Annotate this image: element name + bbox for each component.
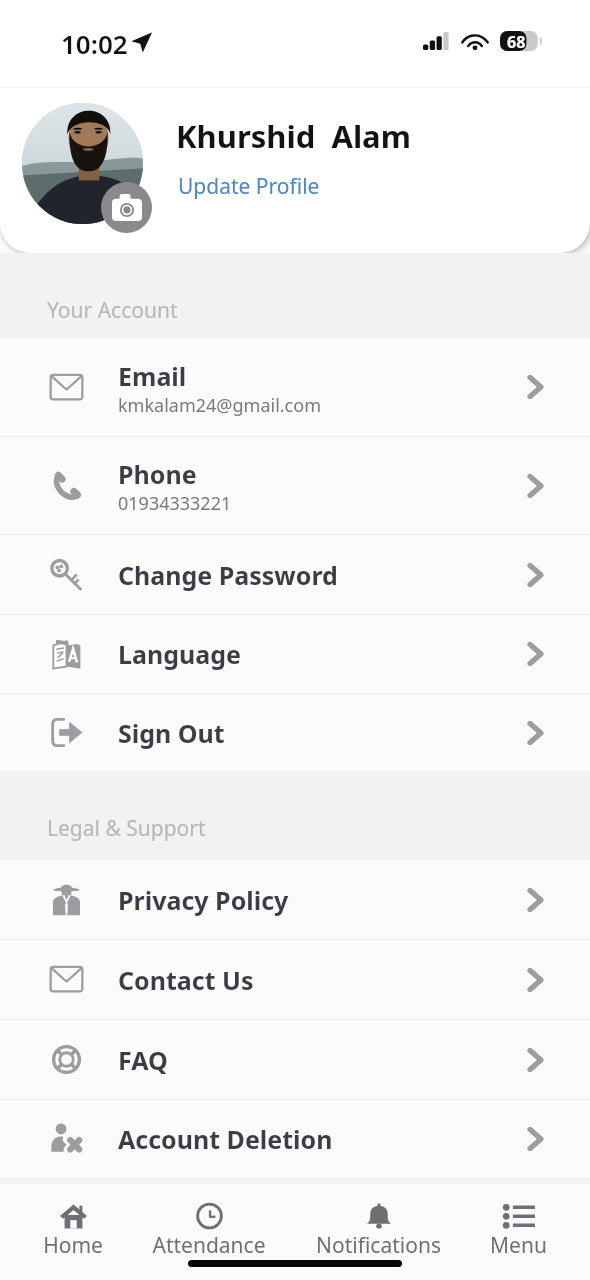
button[interactable]: Email xyxy=(0,338,590,436)
button[interactable]: Update Profile xyxy=(178,172,320,201)
staticText: Email xyxy=(118,359,187,393)
staticText: Phone xyxy=(118,457,197,491)
staticText: Privacy Policy xyxy=(118,883,289,917)
button[interactable]: Profile photo xyxy=(22,103,143,224)
button[interactable]: Phone xyxy=(0,437,590,534)
button[interactable]: Change profile photo xyxy=(101,182,152,233)
button[interactable]: Notifications xyxy=(316,1198,441,1260)
button[interactable]: Menu xyxy=(490,1198,547,1260)
button[interactable]: Language xyxy=(0,615,590,693)
button[interactable]: Attendance xyxy=(152,1198,266,1260)
staticText: kmkalam24@gmail.com xyxy=(118,393,321,418)
button[interactable]: Change Password xyxy=(0,535,590,614)
staticText: Khurshid Alam xyxy=(176,115,411,157)
staticText: Contact Us xyxy=(118,963,254,997)
button[interactable]: Home xyxy=(43,1198,103,1260)
staticText: Change Password xyxy=(118,558,338,592)
staticText: Your Account xyxy=(47,296,178,325)
button[interactable]: Account Deletion xyxy=(0,1100,590,1177)
staticText: 68 xyxy=(507,31,526,51)
staticText: Sign Out xyxy=(118,716,225,750)
staticText: Language xyxy=(118,637,241,671)
staticText: 10:02 xyxy=(61,26,128,61)
staticText: Notifications xyxy=(316,1231,441,1260)
staticText: FAQ xyxy=(118,1043,168,1077)
staticText: Attendance xyxy=(152,1231,266,1260)
staticText: Legal & Support xyxy=(47,814,206,843)
staticText: Home xyxy=(43,1231,103,1260)
button[interactable]: Contact Us xyxy=(0,940,590,1019)
staticText: Menu xyxy=(490,1231,547,1260)
button[interactable]: Privacy Policy xyxy=(0,860,590,939)
button[interactable]: Sign Out xyxy=(0,694,590,771)
button[interactable]: FAQ xyxy=(0,1020,590,1099)
staticText: 01934333221 xyxy=(118,491,232,516)
staticText: Account Deletion xyxy=(118,1122,333,1156)
